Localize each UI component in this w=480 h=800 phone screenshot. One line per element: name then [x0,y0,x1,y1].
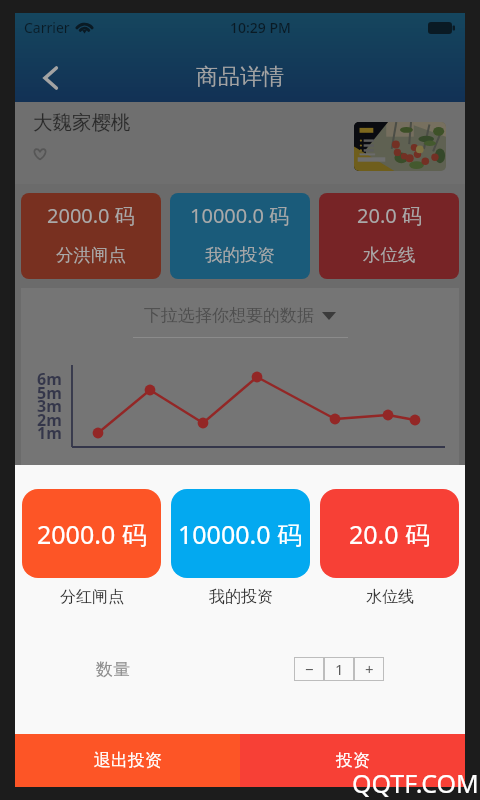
staticText: Carrier [24,18,70,37]
staticText: 我的投资 [205,244,275,266]
staticText: 2m [37,409,62,431]
staticText: 20.0 码 [349,517,431,551]
staticText: QQTF.COM [352,766,479,800]
button[interactable]: 2000.0 码 [21,193,161,279]
button[interactable]: 10000.0 码 [170,193,310,279]
staticText: 1 [335,659,344,679]
staticText: 我的投资 [209,587,273,607]
staticText: 投资 [336,750,370,771]
staticText: 退出投资 [94,750,162,771]
staticText: 大魏家樱桃 [33,110,131,135]
staticText: 分洪闸点 [56,244,126,266]
button[interactable]: Back [31,59,69,97]
staticText: 商品详情 [196,63,284,91]
staticText: 2000.0 码 [47,202,135,229]
staticText: 分红闸点 [60,587,124,607]
staticText: 下拉选择你想要的数据 [144,305,314,326]
staticText: 1m [37,422,62,444]
staticText: 数量 [96,659,130,680]
staticText: 20.0 码 [357,202,422,229]
button[interactable]: 退出投资 [15,734,240,787]
button[interactable]: Increase quantity [355,658,383,680]
staticText: 3m [37,395,62,417]
staticText: + [365,659,374,679]
button[interactable]: 20.0 码 [320,489,459,578]
button[interactable]: Decrease quantity [295,658,323,680]
button[interactable]: 2000.0 码 [22,489,161,578]
staticText: 水位线 [363,244,416,266]
button[interactable]: 20.0 码 [319,193,459,279]
staticText: − [305,659,314,679]
staticText: 5m [37,382,62,404]
staticText: 10000.0 码 [190,202,290,229]
staticText: 6m [37,368,62,390]
staticText: 水位线 [366,587,414,607]
staticText: 2000.0 码 [37,517,147,551]
button[interactable]: 投资 [240,734,465,787]
staticText: 10000.0 码 [178,517,303,551]
staticText: 10:29 PM [230,18,291,37]
button[interactable]: 10000.0 码 [171,489,310,578]
button[interactable]: Select data [144,305,336,326]
button[interactable]: 1 [325,658,353,680]
